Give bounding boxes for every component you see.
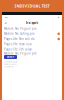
button[interactable]: Pages life chan nua (2, 42, 62, 47)
button[interactable]: Mobile No Sofing-pre (2, 31, 62, 36)
staticText: Mobile No Peguin pre (4, 52, 37, 55)
button[interactable]: Mobile No Peguin pre (2, 26, 62, 31)
staticText: 9:41 (5, 17, 8, 18)
staticText: Test xyzab (25, 21, 38, 25)
staticText: Pages lith colan (4, 66, 14, 67)
staticText: Pages Life Nin soli do (4, 37, 35, 41)
staticText: Pages life lith colan (4, 48, 32, 51)
staticText: Pages life nin soli dolor (4, 61, 18, 63)
button[interactable]: Back (3, 20, 8, 25)
staticText: Enter (7, 55, 14, 59)
staticText: Mobile nua pegu sit (4, 63, 16, 65)
staticText: INDIVIDUAL TEST (14, 3, 49, 9)
staticText: Pages life chan nua (4, 42, 31, 46)
button[interactable]: Pages Life Nin soli do (2, 36, 62, 42)
button[interactable]: Pages life lith colan (2, 47, 62, 52)
staticText: Mobile No Peguin pre (4, 27, 37, 30)
button[interactable]: Enter (4, 55, 17, 59)
staticText: Mobile No Sofing-pre (4, 32, 35, 35)
staticText: < (4, 20, 6, 26)
